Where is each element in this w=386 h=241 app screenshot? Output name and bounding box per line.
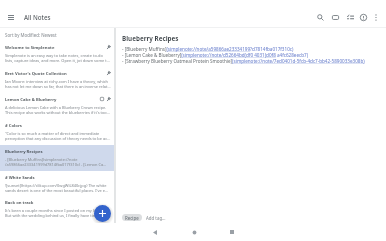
staticText: All Notes [24, 13, 51, 21]
staticText: - [Blueberry Muffins](simplenote://note [5, 157, 78, 162]
button[interactable]: Search [312, 8, 328, 26]
staticText: Back on track [5, 200, 34, 206]
button[interactable]: New note [94, 205, 111, 222]
button[interactable]: # Colors [0, 119, 114, 145]
staticText: Lemon Cake & Blueberry [5, 97, 57, 103]
staticText: This recipe also works without the blueb… [5, 110, 110, 115]
staticText: Ian Moore: interview at richy.com I have… [5, 79, 109, 84]
button[interactable]: Recipe [122, 214, 142, 221]
button[interactable]: # White Sands [0, 171, 114, 197]
staticText: sands desert is one of the most beautifu… [5, 188, 108, 193]
staticText: /a59866ae233341999d7814fba017f310c) - [L… [5, 162, 107, 167]
staticText: Simplenote is an easy way to take notes,… [5, 53, 103, 58]
staticText: Blueberry Recipes [5, 149, 43, 155]
button[interactable]: Blueberry Recipes [0, 145, 114, 171]
staticText: Sort by Modified: Newest [5, 32, 57, 38]
staticText: Add tag… [146, 215, 166, 221]
button[interactable]: Note information [357, 8, 370, 26]
staticText: A delicious Lemon Cake with a Blueberry … [5, 105, 107, 110]
staticText: - [Lemon Cake & Blueberry](simplenote://… [122, 52, 309, 58]
staticText: has not let me down so far, that there i… [5, 84, 111, 89]
staticText: - [Strawberry Blueberry Oatmeal Protein … [122, 58, 365, 64]
staticText: Bret Victor's Quote Collection [5, 71, 67, 77]
staticText: "Color is so much a matter of direct and… [5, 131, 100, 136]
staticText: ![sunset](https://clikup.com/0wgWiL840r.… [5, 183, 107, 188]
button[interactable]: Checklist [343, 8, 357, 26]
button[interactable]: Back [148, 225, 162, 239]
staticText: It's been a couple months since I posted… [5, 208, 101, 213]
staticText: - [Blueberry Muffins](simplenote://note/… [122, 46, 294, 52]
staticText: # Colors [5, 123, 22, 129]
staticText: Welcome to Simplenote [5, 45, 55, 51]
button[interactable]: Recent apps [225, 225, 239, 239]
button[interactable]: Note display mode [328, 8, 343, 26]
button[interactable]: Lemon Cake & Blueberry [0, 93, 114, 119]
staticText: perception that any discussion of theory… [5, 136, 111, 141]
staticText: Blueberry Recipes [122, 34, 179, 43]
button[interactable]: More options [370, 8, 382, 26]
staticText: lists, capture ideas, and more. Open it,… [5, 58, 110, 63]
button[interactable]: Home [187, 225, 201, 239]
button[interactable]: Back on track [0, 196, 114, 222]
staticText: Recipe [125, 215, 139, 221]
button[interactable]: Bret Victor's Quote Collection [0, 67, 114, 93]
button[interactable]: Open navigation menu [2, 8, 20, 26]
staticText: But with the wedding behind us, I finall… [5, 213, 100, 218]
staticText: # White Sands [5, 175, 35, 181]
button[interactable]: Welcome to Simplenote [0, 41, 114, 67]
